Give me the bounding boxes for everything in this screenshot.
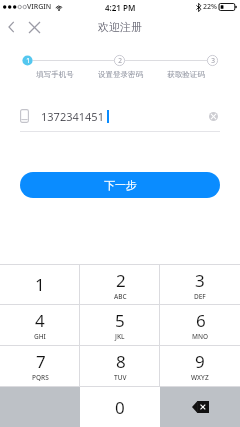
button[interactable]: Delete: [160, 387, 240, 427]
button[interactable]: 4: [0, 305, 80, 345]
staticText: PQRS: [32, 373, 49, 382]
staticText: 3: [211, 56, 215, 65]
button[interactable]: 9: [160, 346, 240, 386]
button[interactable]: 6: [160, 305, 240, 345]
staticText: 获取验证码: [167, 70, 205, 79]
button[interactable]: Close: [22, 15, 46, 39]
staticText: 欢迎注册: [98, 20, 142, 34]
staticText: 填写手机号: [36, 70, 74, 79]
button[interactable]: Back: [0, 16, 22, 38]
button[interactable]: 5: [80, 305, 160, 345]
staticText: ABC: [114, 292, 127, 301]
staticText: 22%: [203, 2, 217, 12]
staticText: DEF: [194, 292, 206, 301]
staticText: MNO: [192, 332, 209, 341]
staticText: 1372341451: [41, 109, 104, 124]
staticText: 4:21 PM: [105, 2, 136, 13]
button[interactable]: 3: [160, 265, 240, 304]
button[interactable]: 7: [0, 346, 80, 386]
staticText: 1: [26, 56, 30, 65]
staticText: VIRGIN: [27, 2, 52, 12]
staticText: 8: [116, 350, 126, 373]
staticText: 设置登录密码: [98, 70, 143, 79]
staticText: WXYZ: [191, 373, 209, 382]
staticText: 5: [115, 309, 125, 332]
button[interactable]: 1372341451: [20, 105, 220, 127]
staticText: 4: [35, 309, 45, 332]
button[interactable]: 8: [80, 346, 160, 386]
button[interactable]: Clear: [206, 109, 220, 123]
staticText: 2: [118, 56, 122, 65]
staticText: 9: [195, 350, 205, 373]
staticText: JKL: [115, 332, 125, 341]
staticText: 1: [35, 273, 45, 296]
staticText: 0: [115, 396, 125, 419]
staticText: GHI: [34, 332, 46, 341]
staticText: 6: [196, 309, 206, 332]
button[interactable]: 0: [80, 387, 160, 427]
staticText: TUV: [114, 373, 127, 382]
button[interactable]: 2: [80, 265, 160, 304]
staticText: 3: [195, 269, 205, 292]
staticText: 下一步: [104, 178, 137, 192]
staticText: 2: [116, 269, 126, 292]
staticText: 7: [36, 350, 46, 373]
button[interactable]: 1: [0, 265, 80, 304]
button[interactable]: 下一步: [20, 172, 220, 198]
